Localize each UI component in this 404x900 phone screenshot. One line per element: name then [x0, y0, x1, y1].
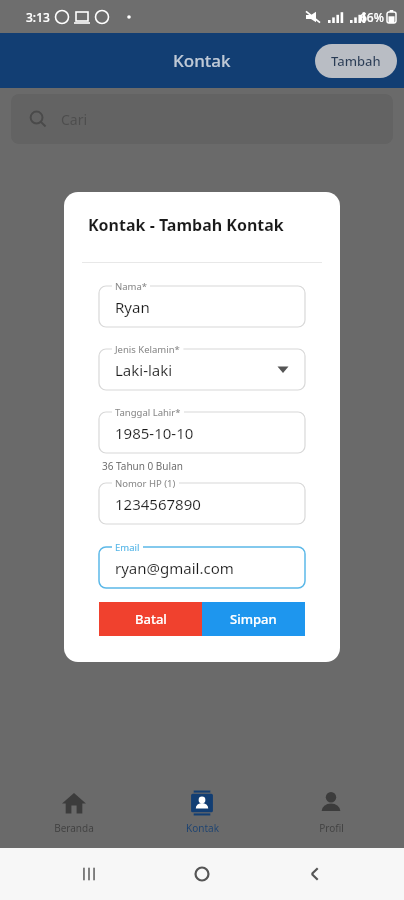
staticText: Nama*: [115, 280, 147, 293]
button[interactable]: Recent apps: [65, 850, 113, 898]
button[interactable]: Tambah: [315, 44, 397, 78]
staticText: Ryan: [115, 297, 150, 317]
button[interactable]: Tanggal Lahir*: [99, 405, 305, 453]
button[interactable]: Nama*: [99, 279, 305, 327]
staticText: 3:13: [26, 9, 50, 25]
button[interactable]: Jenis Kelamin*: [99, 342, 305, 390]
staticText: Laki-laki: [115, 360, 173, 380]
staticText: Simpan: [230, 610, 277, 628]
button[interactable]: Nomor HP (1): [99, 476, 305, 524]
staticText: Cari: [61, 110, 88, 129]
staticText: Tambah: [331, 52, 381, 70]
button[interactable]: Home: [178, 850, 226, 898]
staticText: 1985-10-10: [115, 423, 194, 443]
staticText: Beranda: [54, 821, 94, 835]
staticText: Batal: [135, 610, 167, 628]
button[interactable]: Back: [291, 850, 339, 898]
staticText: Kontak - Tambah Kontak: [88, 214, 284, 236]
staticText: Profil: [319, 821, 344, 835]
staticText: Kontak: [173, 49, 231, 72]
button[interactable]: Batal: [99, 602, 202, 636]
button[interactable]: Beranda: [19, 784, 129, 841]
staticText: Nomor HP (1): [115, 477, 176, 490]
staticText: 66%: [360, 9, 384, 25]
staticText: 36 Tahun 0 Bulan: [102, 459, 183, 473]
staticText: Jenis Kelamin*: [115, 343, 180, 356]
staticText: ryan@gmail.com: [115, 558, 234, 578]
staticText: 1234567890: [115, 494, 201, 514]
other: Profil: [318, 790, 344, 816]
other: Beranda: [61, 790, 87, 816]
staticText: Kontak: [186, 821, 219, 835]
staticText: Email: [115, 541, 140, 554]
button[interactable]: Simpan: [202, 602, 305, 636]
staticText: Tanggal Lahir*: [115, 406, 181, 419]
button[interactable]: Email: [99, 540, 305, 588]
other: Kontak: [189, 790, 215, 816]
button[interactable]: Kontak: [147, 784, 257, 841]
button[interactable]: Profil: [276, 784, 386, 841]
